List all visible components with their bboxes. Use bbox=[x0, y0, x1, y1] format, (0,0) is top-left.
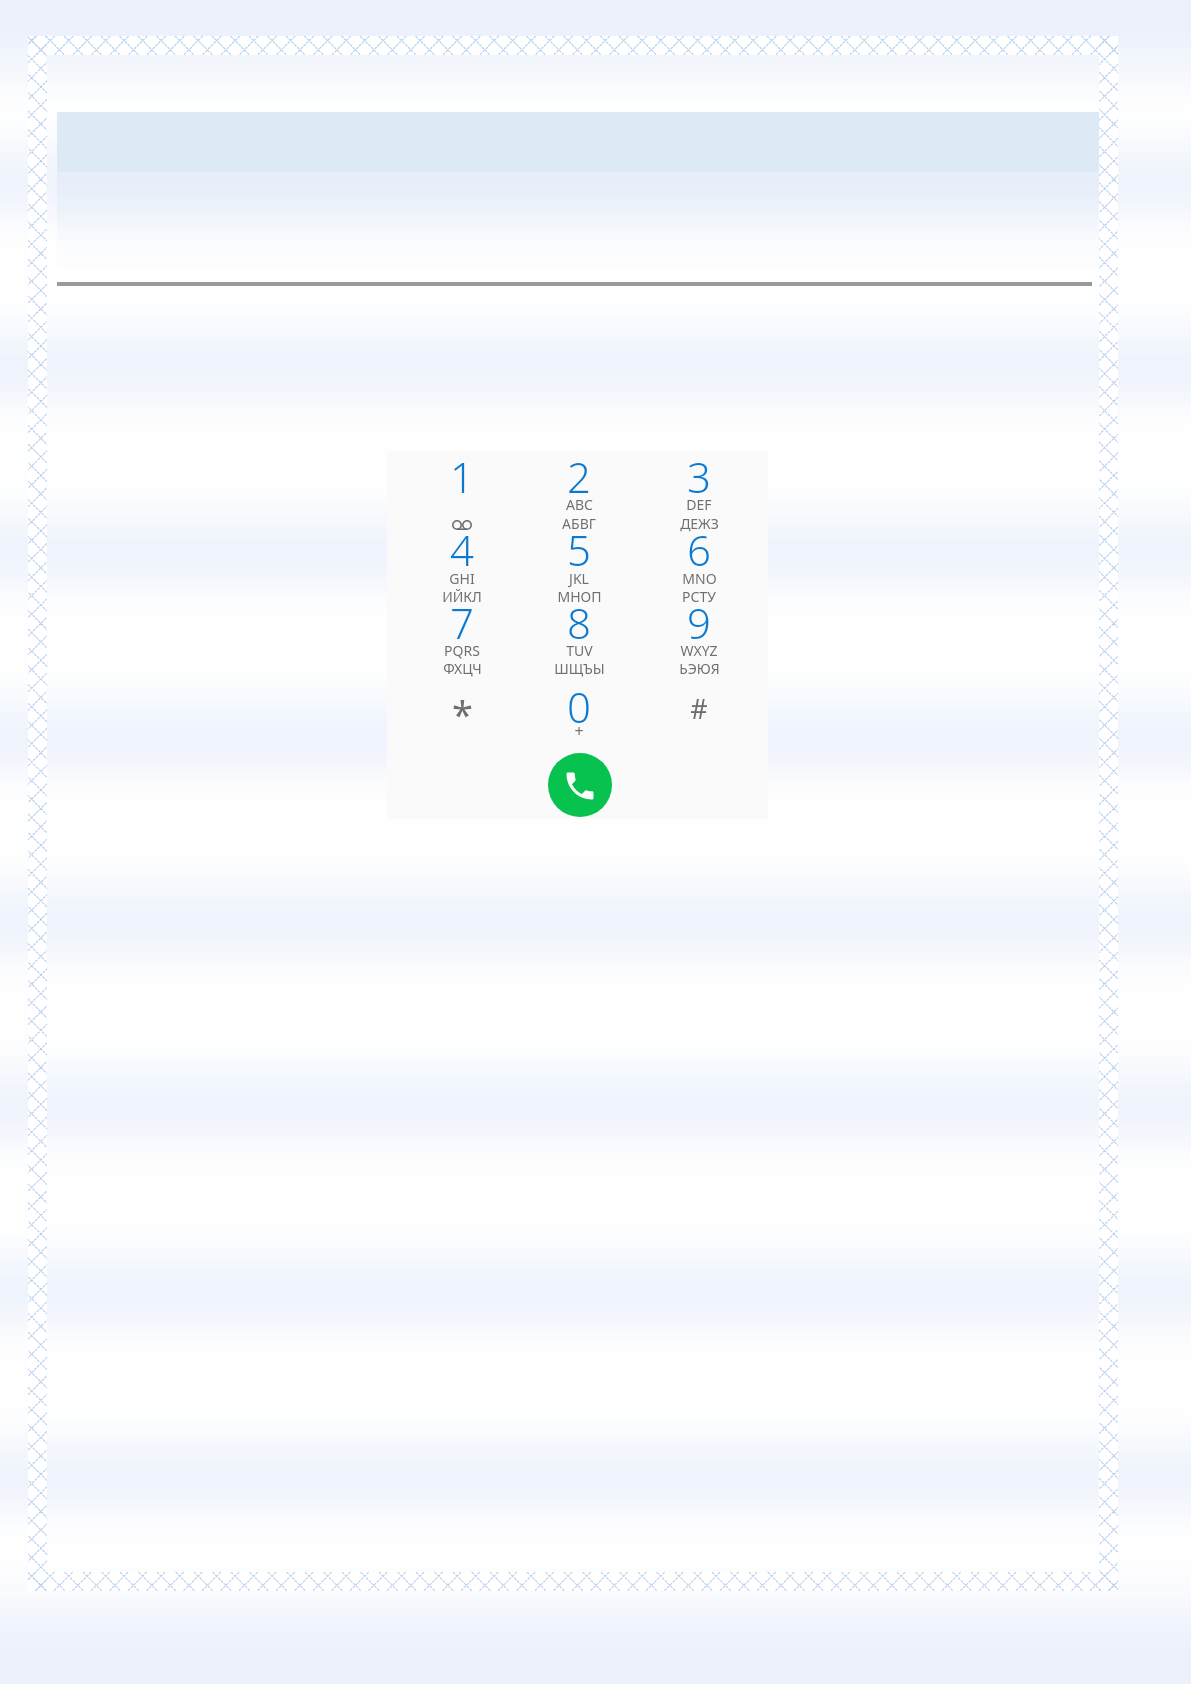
staticText: ЬЭЮЯ bbox=[679, 659, 720, 678]
button[interactable]: 7 bbox=[404, 596, 520, 669]
staticText: JKL bbox=[569, 569, 589, 588]
staticText: ABC bbox=[566, 495, 593, 514]
button[interactable]: star bbox=[404, 680, 520, 753]
button[interactable]: 5 bbox=[521, 523, 637, 596]
staticText: ФХЦЧ bbox=[443, 659, 482, 678]
staticText: ДЕЖЗ bbox=[680, 514, 719, 533]
button[interactable]: 3 bbox=[641, 450, 757, 523]
staticText: 0 bbox=[567, 678, 591, 735]
staticText: WXYZ bbox=[680, 641, 718, 660]
staticText: ИЙКЛ bbox=[442, 587, 482, 606]
staticText: GHI bbox=[449, 569, 475, 588]
button[interactable]: Voicemail bbox=[432, 500, 492, 550]
button[interactable]: Call bbox=[548, 753, 612, 817]
staticText: * bbox=[452, 688, 473, 740]
button[interactable]: 6 bbox=[641, 523, 757, 596]
button[interactable]: hash bbox=[641, 680, 757, 753]
staticText: 6 bbox=[687, 521, 711, 578]
staticText: ШЩЪЫ bbox=[554, 659, 605, 678]
staticText: TUV bbox=[566, 641, 593, 660]
staticText: 3 bbox=[687, 448, 711, 505]
staticText: 9 bbox=[687, 594, 711, 651]
staticText: DEF bbox=[686, 495, 712, 514]
staticText: АБВГ bbox=[562, 514, 596, 533]
staticText: 1 bbox=[450, 448, 474, 505]
staticText: 8 bbox=[567, 594, 591, 651]
staticText: # bbox=[690, 690, 708, 727]
staticText: МНОП bbox=[557, 587, 602, 606]
staticText: PQRS bbox=[444, 641, 480, 660]
button[interactable]: 8 bbox=[521, 596, 637, 669]
staticText: + bbox=[574, 720, 584, 742]
button[interactable]: 0 plus bbox=[521, 680, 637, 753]
button[interactable]: 1 bbox=[404, 450, 520, 523]
staticText: 7 bbox=[450, 594, 474, 651]
staticText: 5 bbox=[567, 521, 591, 578]
staticText: РСТУ bbox=[682, 587, 716, 606]
staticText: MNO bbox=[682, 569, 717, 588]
staticText: 4 bbox=[450, 521, 474, 578]
button[interactable]: 2 bbox=[521, 450, 637, 523]
button[interactable]: 9 bbox=[641, 596, 757, 669]
button[interactable]: 4 bbox=[404, 523, 520, 596]
staticText: 2 bbox=[567, 448, 591, 505]
